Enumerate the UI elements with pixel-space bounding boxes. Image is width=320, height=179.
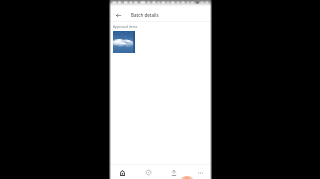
staticText: Approved items — [113, 24, 138, 28]
button[interactable]: Back — [113, 10, 124, 21]
staticText: Batch details — [131, 12, 159, 18]
button[interactable]: Approved item photo — [113, 31, 135, 53]
button[interactable]: More — [187, 165, 213, 179]
button[interactable]: Scan — [135, 165, 161, 179]
button[interactable]: Home — [110, 165, 135, 179]
button[interactable]: Upload — [161, 165, 187, 179]
